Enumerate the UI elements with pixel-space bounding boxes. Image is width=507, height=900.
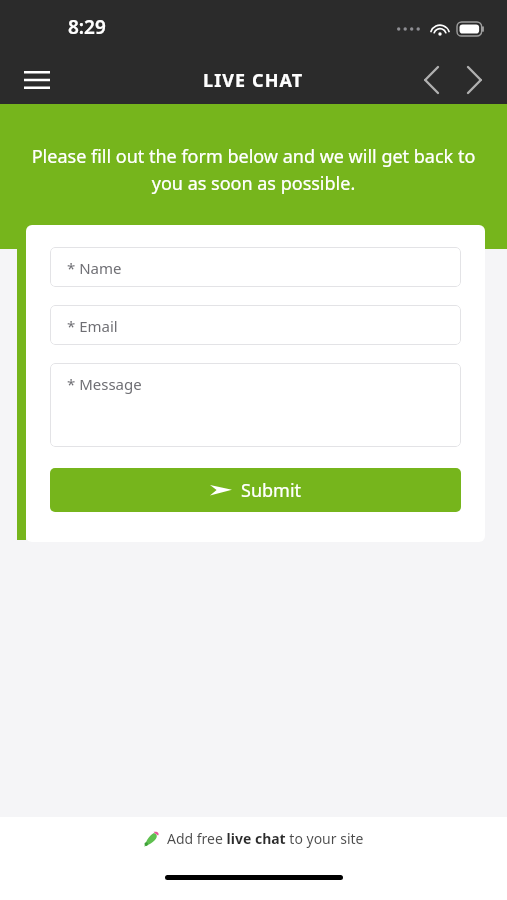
staticText: * Email xyxy=(67,316,118,336)
staticText: LIVE CHAT xyxy=(203,68,304,93)
button[interactable]: Submit xyxy=(50,468,461,512)
button[interactable]: * Message xyxy=(50,363,461,447)
button[interactable]: * Email xyxy=(50,305,461,345)
button[interactable]: Back xyxy=(409,58,453,102)
button[interactable]: Add free live chat to your site xyxy=(0,817,507,860)
staticText: * Message xyxy=(67,374,142,394)
button[interactable]: Menu xyxy=(14,57,60,103)
staticText: Add free live chat to your site xyxy=(167,829,364,848)
staticText: Submit xyxy=(241,478,302,503)
button[interactable]: Forward xyxy=(453,58,497,102)
staticText: 8:29 xyxy=(68,14,106,40)
button[interactable]: * Name xyxy=(50,247,461,287)
staticText: * Name xyxy=(67,258,122,278)
staticText: Please fill out the form below and we wi… xyxy=(26,144,481,195)
